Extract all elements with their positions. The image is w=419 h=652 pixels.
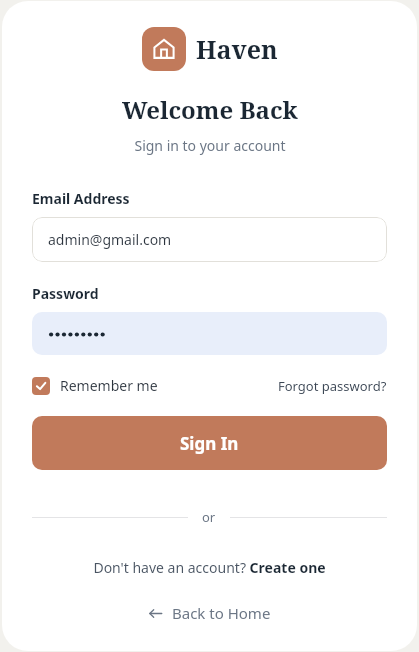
button[interactable]: Forgot password?	[278, 377, 387, 395]
button[interactable]: Back to Home	[32, 603, 387, 623]
button[interactable]: Sign In	[32, 416, 387, 470]
staticText: Forgot password?	[278, 377, 387, 395]
button[interactable]	[32, 312, 387, 355]
staticText: Welcome Back	[122, 93, 298, 126]
staticText: Back to Home	[172, 603, 271, 623]
staticText: or	[202, 508, 216, 526]
staticText: Sign in to your account	[134, 136, 286, 155]
button[interactable]: admin@gmail.com	[32, 217, 387, 262]
staticText: Haven	[196, 32, 278, 66]
staticText: Email Address	[32, 189, 130, 208]
button[interactable]: Don't have an account? Create one	[32, 558, 387, 577]
staticText: admin@gmail.com	[48, 230, 172, 249]
button[interactable]: Remember me	[32, 376, 158, 395]
staticText: Remember me	[60, 376, 158, 395]
other: Back to Home	[148, 606, 163, 621]
staticText: Don't have an account? Create one	[93, 558, 326, 577]
staticText: Sign In	[180, 432, 239, 455]
staticText: Password	[32, 284, 99, 303]
